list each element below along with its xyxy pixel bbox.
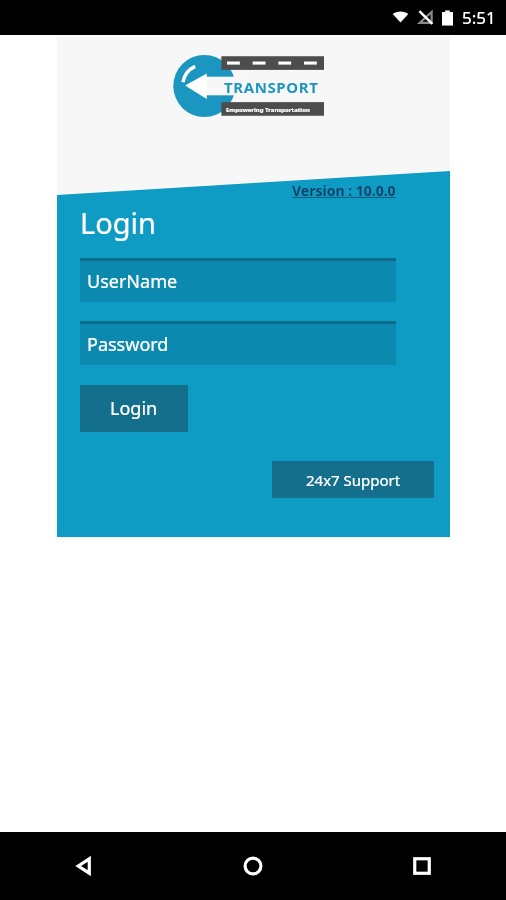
staticText: UserName (87, 269, 178, 294)
staticText: 24x7 Support (306, 470, 401, 490)
staticText: TRANSPORT (224, 77, 319, 97)
button[interactable]: Back (0, 832, 168, 900)
button[interactable]: Login (80, 385, 188, 432)
button[interactable]: Password (80, 321, 396, 365)
staticText: Login (80, 203, 156, 242)
button[interactable]: UserName (80, 258, 396, 302)
button[interactable]: Home (168, 832, 337, 900)
staticText: Empowering Transportation (226, 106, 310, 114)
staticText: 5:51 (462, 6, 496, 29)
button[interactable]: 24x7 Support (272, 461, 434, 498)
staticText: Version : 10.0.0 (292, 181, 396, 200)
button[interactable]: Recent apps (337, 832, 506, 900)
staticText: Login (110, 396, 158, 421)
staticText: Password (87, 332, 169, 357)
